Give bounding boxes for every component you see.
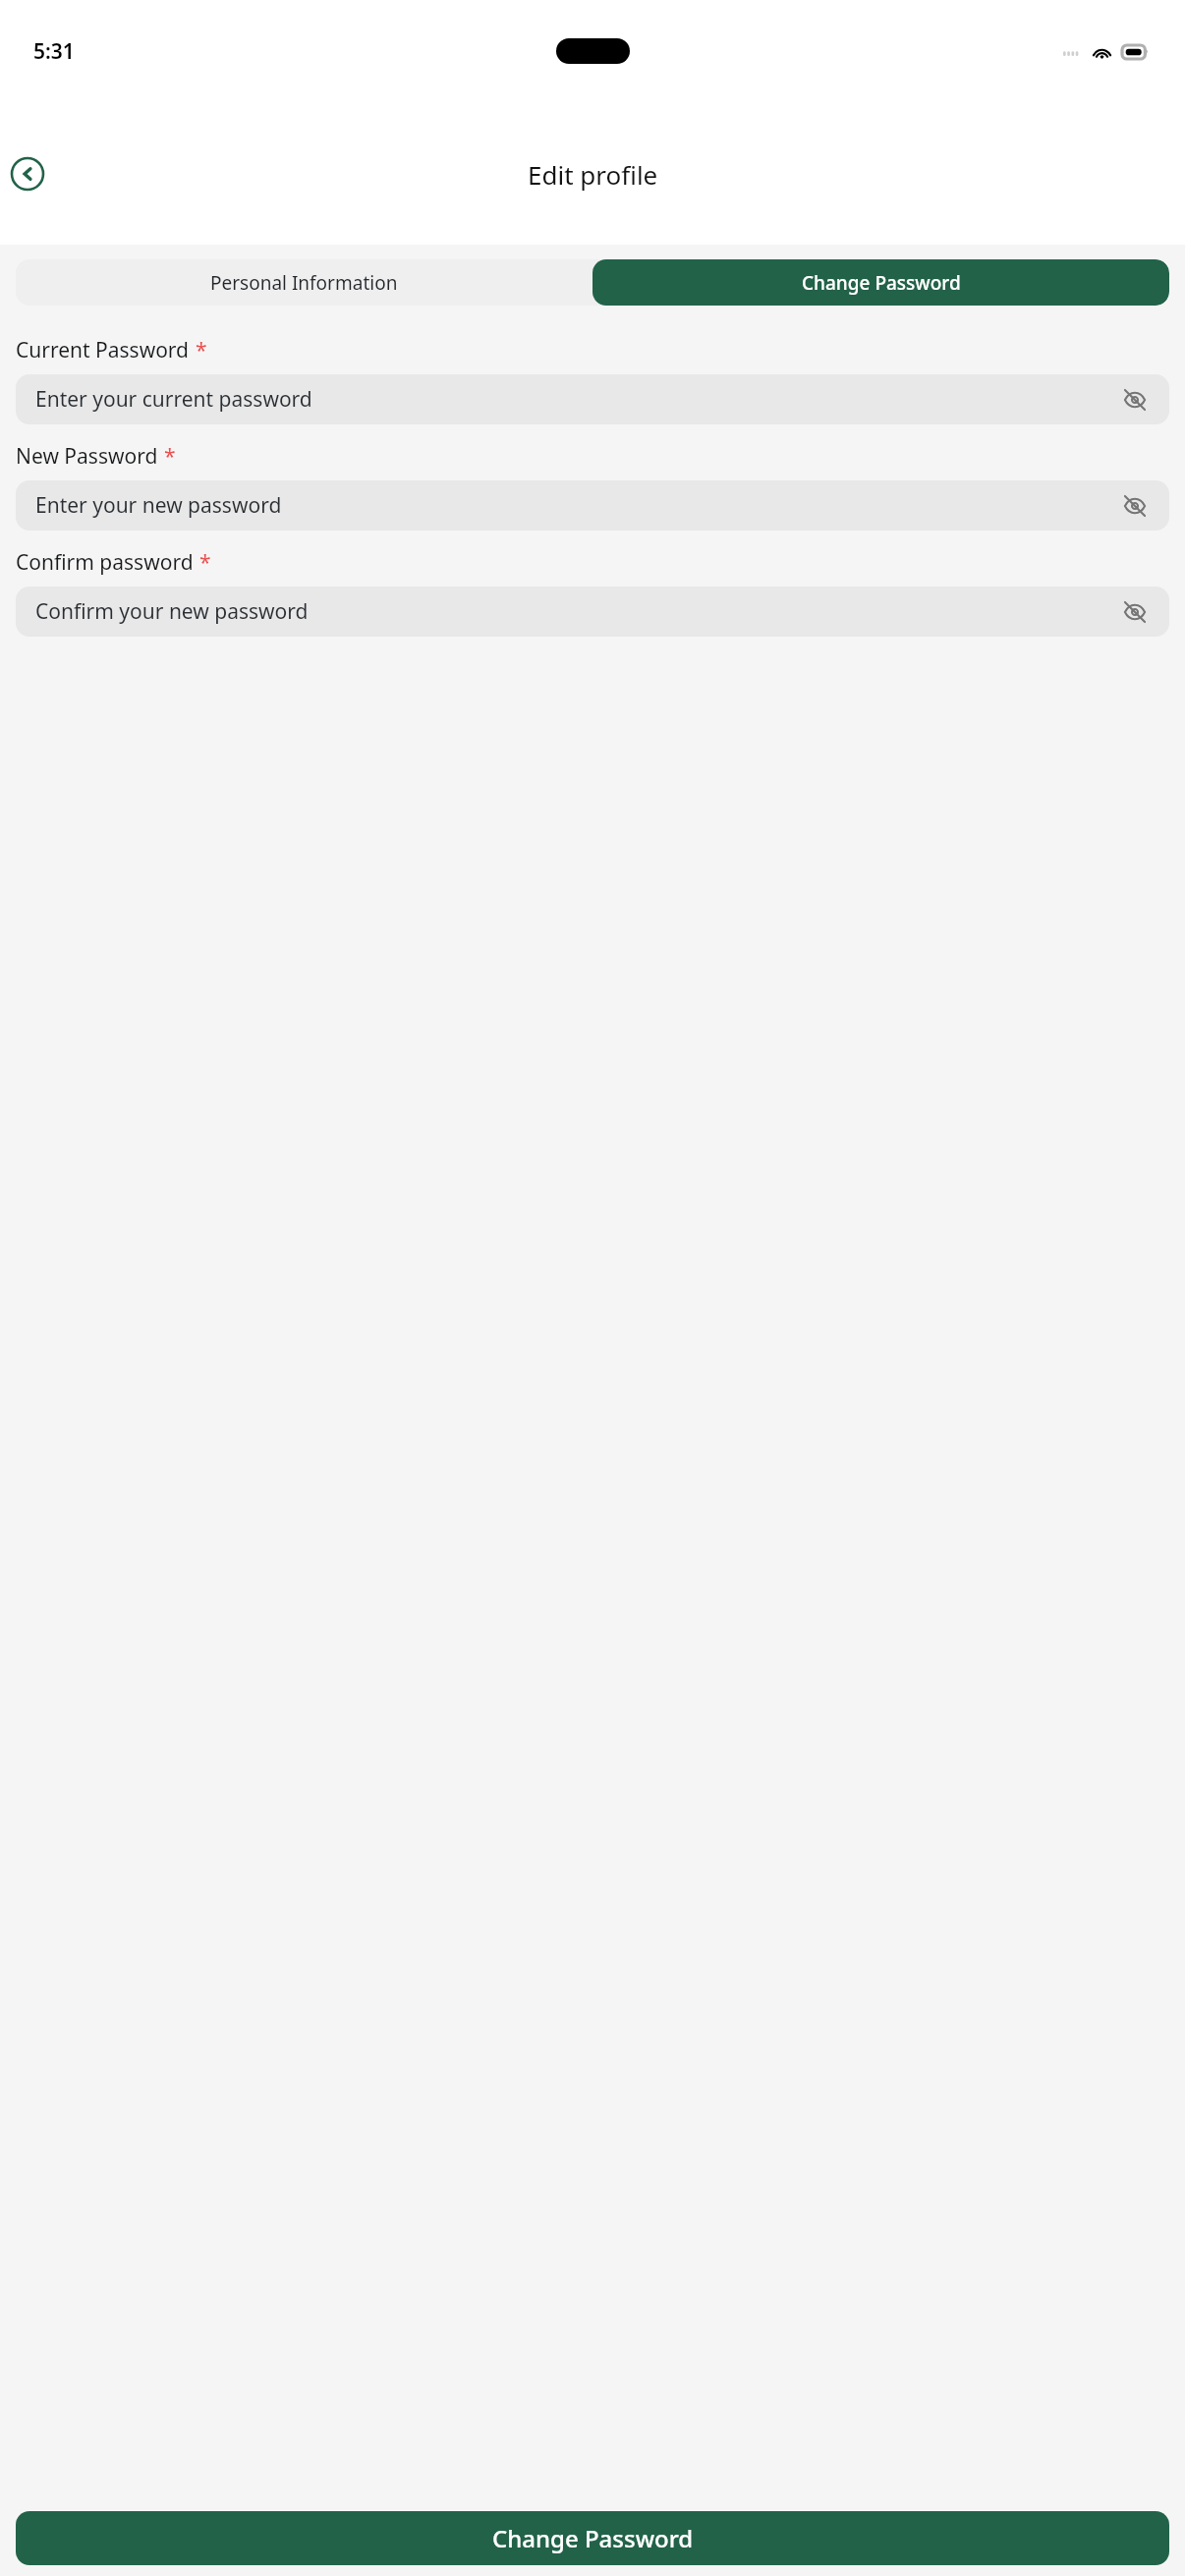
staticText: New Password — [16, 442, 158, 471]
staticText: Current Password — [16, 336, 190, 364]
button[interactable]: Change Password — [592, 259, 1169, 306]
staticText: 5:31 — [33, 37, 75, 66]
staticText: Change Password — [492, 2522, 694, 2554]
button[interactable]: Change Password — [16, 2511, 1169, 2565]
staticText: Personal Information — [210, 270, 398, 296]
staticText: Enter your new password — [35, 491, 1120, 520]
button[interactable]: Enter your new password — [16, 480, 1169, 531]
staticText: Change Password — [802, 270, 961, 296]
button[interactable]: Confirm your new password — [16, 587, 1169, 637]
button[interactable]: Toggle password visibility — [1120, 597, 1150, 627]
staticText: Enter your current password — [35, 385, 1120, 414]
staticText: Confirm password — [16, 548, 194, 577]
button[interactable]: Toggle password visibility — [1120, 491, 1150, 521]
button[interactable]: Back — [11, 157, 44, 191]
button[interactable]: Personal Information — [16, 259, 592, 306]
button[interactable]: Enter your current password — [16, 374, 1169, 424]
staticText: Edit profile — [528, 157, 658, 192]
button[interactable]: Toggle password visibility — [1120, 385, 1150, 415]
staticText: Confirm your new password — [35, 597, 1120, 626]
staticText: * — [196, 336, 207, 364]
staticText: * — [199, 548, 211, 577]
staticText: * — [164, 442, 176, 471]
